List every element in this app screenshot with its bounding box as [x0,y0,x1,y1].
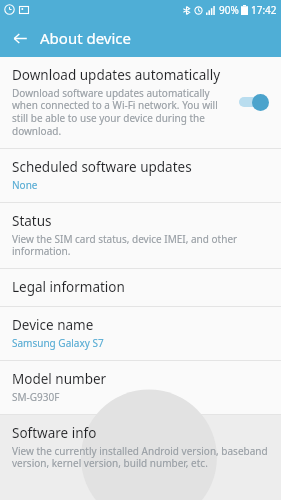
staticText: Samsung Galaxy S7 [12,336,104,350]
button[interactable]: Scheduled software updates [0,149,281,202]
staticText: View the SIM card status, device IMEI, a… [12,232,269,258]
button[interactable]: Legal information [0,269,281,306]
button[interactable] [237,92,271,112]
staticText: Scheduled software updates [12,158,192,176]
staticText: 90% [219,3,239,17]
staticText: About device [40,28,132,48]
button[interactable]: Model number [0,361,281,414]
button[interactable]: Status [0,203,281,268]
staticText: 17:42 [251,3,277,17]
button[interactable]: Download updates automatically [0,57,281,148]
staticText: Software info [12,424,97,442]
staticText: View the currently installed Android ver… [12,444,269,470]
staticText: Legal information [12,278,125,296]
staticText: Status [12,212,52,230]
staticText: None [12,178,38,192]
button[interactable]: Software info [0,415,281,500]
staticText: Device name [12,316,94,334]
staticText: Download updates automatically [12,66,221,84]
staticText: SM-G930F [12,390,60,404]
button[interactable]: Device name [0,307,281,360]
staticText: Download software updates automatically … [12,86,231,138]
staticText: Model number [12,370,107,388]
button[interactable]: Back [6,24,34,52]
